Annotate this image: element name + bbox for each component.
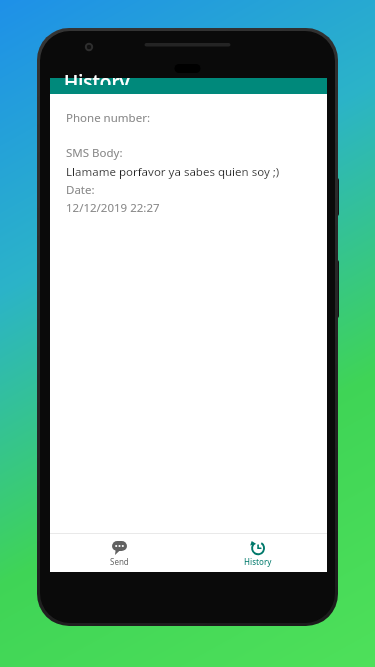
staticText: 12/12/2019 22:27 [66,200,160,216]
staticText: Send [110,556,129,567]
staticText: SMS Body: [66,145,123,161]
staticText: History [244,556,272,567]
staticText: History [64,69,130,85]
staticText: Date: [66,182,95,198]
staticText: Llamame porfavor ya sabes quien soy ;) [66,164,280,180]
button[interactable]: Phone number: [56,99,321,229]
button[interactable]: Send [50,534,188,572]
staticText: Phone number: [66,110,150,126]
button[interactable]: History [188,534,327,572]
